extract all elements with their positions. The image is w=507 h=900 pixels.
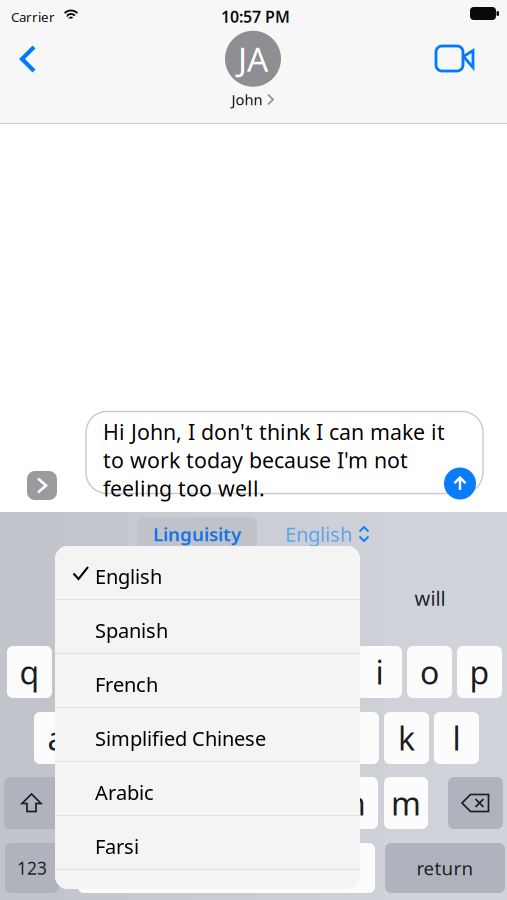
button[interactable]: Simplified Chinese xyxy=(55,708,360,762)
button[interactable]: d xyxy=(134,712,179,764)
staticText: g xyxy=(246,717,266,759)
button[interactable]: j xyxy=(334,712,379,764)
button[interactable]: Back xyxy=(2,37,54,81)
staticText: Linguisity xyxy=(153,522,241,546)
staticText: z xyxy=(98,782,113,824)
staticText: English xyxy=(285,521,352,547)
button[interactable]: m xyxy=(384,777,428,829)
staticText: English xyxy=(95,563,162,590)
button[interactable]: Delete xyxy=(448,777,503,829)
staticText: n xyxy=(346,782,366,824)
button[interactable]: f xyxy=(184,712,229,764)
staticText: a xyxy=(47,717,65,759)
button[interactable]: x xyxy=(134,777,178,829)
staticText: Hi John, I don't think I can make it to … xyxy=(103,417,445,502)
button[interactable]: o xyxy=(407,646,452,698)
button[interactable]: a xyxy=(34,712,79,764)
staticText: k xyxy=(398,717,415,759)
staticText: JA xyxy=(238,37,268,81)
staticText: m xyxy=(391,782,421,824)
button[interactable]: Arabic xyxy=(55,762,360,816)
button[interactable]: return xyxy=(385,843,505,893)
button[interactable]: Spanish xyxy=(55,600,360,654)
staticText: Portuguese xyxy=(95,887,202,900)
staticText: x xyxy=(147,782,164,824)
button[interactable]: w xyxy=(57,646,102,698)
staticText: French xyxy=(95,671,158,698)
staticText: Simplified Chinese xyxy=(95,725,266,752)
staticText: 10:57 PM xyxy=(221,6,290,27)
button[interactable]: p xyxy=(457,646,502,698)
staticText: e xyxy=(120,651,138,693)
button[interactable]: l xyxy=(434,712,479,764)
button[interactable]: Farsi xyxy=(55,816,360,870)
button[interactable]: n xyxy=(334,777,378,829)
staticText: i xyxy=(375,651,383,693)
button[interactable]: g xyxy=(234,712,279,764)
staticText: Farsi xyxy=(95,833,139,860)
staticText: p xyxy=(469,651,489,693)
button[interactable]: Apps xyxy=(27,471,57,500)
button[interactable]: Linguisity xyxy=(137,517,257,550)
button[interactable]: 123 xyxy=(5,843,59,893)
staticText: space xyxy=(203,856,250,879)
button[interactable]: s xyxy=(84,712,129,764)
button[interactable]: i xyxy=(357,646,402,698)
button[interactable]: FaceTime xyxy=(429,37,485,81)
button[interactable]: Send xyxy=(444,467,476,499)
staticText: q xyxy=(19,651,39,693)
button[interactable]: French xyxy=(55,654,360,708)
button[interactable]: q xyxy=(7,646,52,698)
button[interactable]: space xyxy=(78,843,375,893)
button[interactable]: Shift xyxy=(4,777,59,829)
staticText: f xyxy=(201,717,212,759)
staticText: l xyxy=(452,717,460,759)
button[interactable]: Portuguese xyxy=(55,870,360,900)
button[interactable]: k xyxy=(384,712,429,764)
button[interactable]: English xyxy=(285,518,370,550)
staticText: Spanish xyxy=(95,617,168,644)
button[interactable]: e xyxy=(107,646,152,698)
staticText: will xyxy=(414,585,445,611)
staticText: d xyxy=(146,717,166,759)
button[interactable]: JA xyxy=(183,29,323,111)
button[interactable]: z xyxy=(84,777,128,829)
staticText: Carrier xyxy=(11,8,55,26)
staticText: Arabic xyxy=(95,779,154,806)
staticText: John xyxy=(231,90,262,109)
staticText: o xyxy=(420,651,439,693)
button[interactable]: English xyxy=(55,546,360,600)
staticText: s xyxy=(99,717,114,759)
staticText: return xyxy=(416,856,473,880)
staticText: 123 xyxy=(17,856,47,879)
